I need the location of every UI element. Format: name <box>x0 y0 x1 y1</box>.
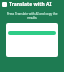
staticText: Press Translate with AI and copy the res… <box>5 12 59 20</box>
staticText: Translate with AI <box>9 1 52 8</box>
